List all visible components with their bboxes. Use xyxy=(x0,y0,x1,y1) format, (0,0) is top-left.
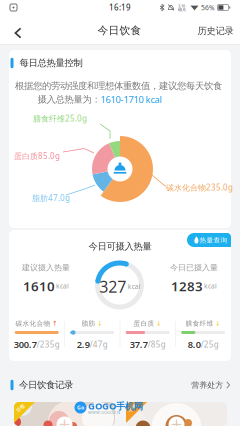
staticText: 热量查询 xyxy=(199,236,227,244)
staticText: 1610-1710 kcal xyxy=(100,93,161,106)
button[interactable]: 历史记录 xyxy=(193,18,237,44)
staticText: 3.10 xyxy=(178,3,185,9)
staticText: 37.7 xyxy=(130,338,148,351)
staticText: 8.0 xyxy=(188,338,201,351)
staticText: 历史记录 xyxy=(197,25,233,37)
staticText: 今日饮食 xyxy=(97,24,141,37)
staticText: KB/S xyxy=(177,7,185,12)
staticText: 每日总热量控制 xyxy=(19,57,82,69)
staticText: kcal xyxy=(128,282,141,291)
staticText: 蛋白质85.0g xyxy=(14,151,60,161)
button[interactable]: 早餐 xyxy=(14,402,115,426)
staticText: 56% xyxy=(201,3,215,12)
staticText: /85g xyxy=(148,339,166,350)
staticText: 2.9 xyxy=(77,338,90,351)
button[interactable]: Back xyxy=(6,21,30,45)
staticText: ↓ xyxy=(156,320,162,327)
staticText: 1610 xyxy=(23,277,55,295)
staticText: 建议摄入热量 xyxy=(22,263,70,272)
staticText: kcal xyxy=(56,282,69,290)
staticText: 早餐 xyxy=(15,405,25,412)
staticText: ↓ xyxy=(97,320,103,327)
staticText: 营养处方 xyxy=(191,380,223,390)
staticText: 摄入总热量为： xyxy=(37,94,100,105)
staticText: /25g xyxy=(201,339,219,350)
staticText: Go xyxy=(77,404,84,411)
staticText: 327 xyxy=(99,276,126,297)
staticText: 16:19 xyxy=(109,2,131,13)
staticText: WWW.GOGO.CN xyxy=(88,410,120,415)
staticText: /47g xyxy=(90,339,108,350)
staticText: 碳水化合物235.0g xyxy=(166,182,233,193)
button[interactable]: 午餐 xyxy=(126,402,227,426)
staticText: /235g xyxy=(37,339,60,350)
staticText: 根据您的劳动强度和理想体重数值，建议您每天饮食 xyxy=(15,80,222,92)
staticText: 膳食纤维 xyxy=(185,319,213,328)
button[interactable]: 热量查询 xyxy=(187,233,231,247)
staticText: ↑ xyxy=(52,320,58,327)
staticText: 今日已摄入量 xyxy=(170,263,218,272)
staticText: 今日饮食记录 xyxy=(19,379,73,391)
staticText: GOGO手机网 xyxy=(88,400,143,412)
staticText: 1283 xyxy=(171,277,203,295)
staticText: 午餐 xyxy=(127,405,137,412)
staticText: 今日可摄入热量 xyxy=(88,241,151,252)
staticText: 碳水化合物 xyxy=(15,319,50,328)
staticText: 蛋白质 xyxy=(133,319,154,328)
staticText: 脂肪47.0g xyxy=(32,193,70,203)
staticText: 膳食纤维25.0g xyxy=(33,113,87,124)
staticText: ↓ xyxy=(215,320,221,327)
staticText: 300.7 xyxy=(14,338,37,351)
button[interactable]: 营养处方 xyxy=(187,375,235,395)
staticText: kcal xyxy=(204,282,217,290)
staticText: 脂肪 xyxy=(81,319,95,328)
